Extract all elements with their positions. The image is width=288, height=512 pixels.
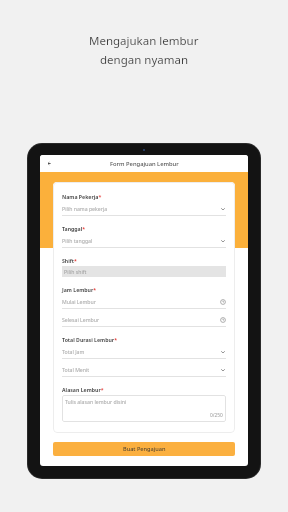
staticText: Total Durasi Lembur* [62,336,117,343]
button[interactable]: Total Jam [62,345,226,359]
staticText: Tanggal* [62,225,86,232]
button[interactable]: Tulis alasan lembur disini [62,395,226,422]
staticText: Nama Pekerja* [62,193,102,200]
button[interactable]: Selesai Lembur [62,313,226,327]
staticText: Jam Lembur* [62,286,97,293]
staticText: Pilih tanggal [62,237,220,244]
staticText: 0/250 [210,412,223,419]
staticText: Tulis alasan lembur disini [65,398,127,405]
staticText: dengan nyaman [100,52,189,68]
button[interactable]: Buat Pengajuan [53,442,235,456]
staticText: Pilih shift [64,268,87,275]
button[interactable]: Mulai Lembur [62,295,226,309]
staticText: Buat Pengajuan [123,445,166,453]
staticText: Shift* [62,257,77,264]
button[interactable]: Pilih shift [62,266,226,277]
staticText: Pilih nama pekerja [62,205,220,212]
staticText: Selesai Lembur [62,316,220,323]
staticText: Form Pengajuan Lembur [110,160,179,168]
staticText: Total Jam [62,348,220,355]
button[interactable]: Pilih tanggal [62,234,226,248]
staticText: Total Menit [62,366,220,373]
staticText: Mengajukan lembur [89,33,199,49]
button[interactable]: Back [45,159,54,168]
button[interactable]: Total Menit [62,363,226,377]
staticText: Mulai Lembur [62,298,220,305]
button[interactable]: Pilih nama pekerja [62,202,226,216]
staticText: Alasan Lembur* [62,386,104,393]
